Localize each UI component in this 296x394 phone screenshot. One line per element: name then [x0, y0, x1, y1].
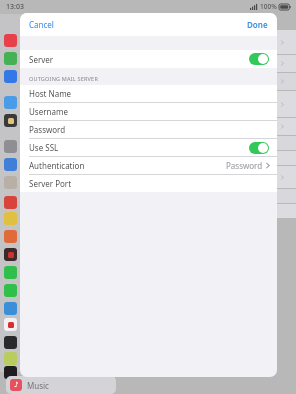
- button[interactable]: Use SSL on: [249, 142, 269, 154]
- staticText: Server: [29, 54, 54, 65]
- staticText: 100%: [260, 2, 277, 11]
- staticText: Server Port: [29, 178, 72, 189]
- staticText: Done: [247, 19, 268, 30]
- staticText: OUTGOING MAIL SERVER: [29, 75, 98, 82]
- button[interactable]: Server on: [249, 53, 269, 65]
- staticText: Settings: [48, 15, 76, 25]
- staticText: Password: [226, 160, 263, 171]
- staticText: Username: [29, 106, 68, 117]
- staticText: ♪: [14, 381, 19, 389]
- button[interactable]: ♪: [6, 376, 116, 394]
- button[interactable]: Done: [247, 19, 268, 30]
- staticText: Music: [27, 380, 49, 391]
- staticText: Host Name: [29, 88, 72, 99]
- button[interactable]: Host Name: [20, 85, 277, 102]
- staticText: Cancel: [29, 19, 54, 30]
- button[interactable]: Cancel: [29, 19, 54, 30]
- staticText: 13:03: [6, 2, 24, 12]
- staticText: Use SSL: [29, 142, 59, 153]
- staticText: Authentication: [29, 160, 85, 171]
- button[interactable]: Authentication: [20, 157, 277, 174]
- staticText: Password: [29, 124, 66, 135]
- button[interactable]: Server Port: [20, 175, 277, 192]
- button[interactable]: Password: [20, 121, 277, 138]
- button[interactable]: Username: [20, 103, 277, 120]
